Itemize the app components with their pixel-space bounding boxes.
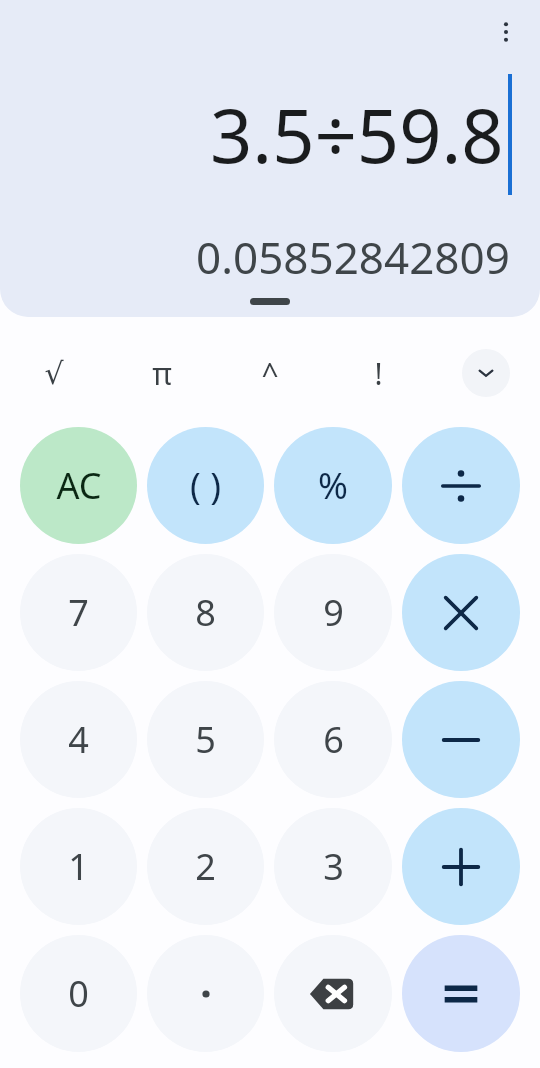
button[interactable]: Multiply bbox=[402, 554, 520, 671]
button[interactable]: 8 bbox=[147, 554, 264, 671]
button[interactable]: √ bbox=[0, 341, 108, 405]
button[interactable]: Decimal point bbox=[147, 935, 264, 1052]
button[interactable]: % bbox=[274, 427, 392, 544]
button[interactable]: Plus bbox=[402, 808, 520, 925]
button[interactable]: 3 bbox=[274, 808, 392, 925]
button[interactable]: ( ) bbox=[147, 427, 264, 544]
staticText: 1 bbox=[68, 842, 89, 891]
button[interactable]: 0 bbox=[20, 935, 137, 1052]
button[interactable]: AC bbox=[20, 427, 137, 544]
staticText: ! bbox=[374, 353, 383, 394]
button[interactable]: 5 bbox=[147, 681, 264, 798]
button[interactable]: More options bbox=[478, 4, 534, 60]
staticText: 4 bbox=[68, 715, 89, 764]
staticText: 0.05852842809 bbox=[196, 227, 510, 287]
staticText: 7 bbox=[68, 588, 89, 637]
staticText: 9 bbox=[323, 588, 344, 637]
button[interactable]: ! bbox=[324, 341, 432, 405]
staticText: 0 bbox=[68, 969, 89, 1018]
staticText: ^ bbox=[261, 353, 279, 394]
button[interactable]: Equals bbox=[402, 935, 520, 1052]
staticText: 2 bbox=[195, 842, 216, 891]
button[interactable]: 7 bbox=[20, 554, 137, 671]
button[interactable]: Minus bbox=[402, 681, 520, 798]
button[interactable]: 2 bbox=[147, 808, 264, 925]
staticText: 3.5÷59.8 bbox=[210, 84, 504, 185]
staticText: √ bbox=[44, 356, 64, 391]
button[interactable]: 9 bbox=[274, 554, 392, 671]
button[interactable] bbox=[250, 298, 290, 305]
button[interactable]: Collapse functions bbox=[462, 349, 510, 397]
button[interactable]: 1 bbox=[20, 808, 137, 925]
button[interactable]: 6 bbox=[274, 681, 392, 798]
staticText: 3 bbox=[323, 842, 344, 891]
staticText: 8 bbox=[195, 588, 216, 637]
staticText: % bbox=[318, 461, 348, 510]
button[interactable]: π bbox=[108, 341, 216, 405]
button[interactable]: 4 bbox=[20, 681, 137, 798]
staticText: 6 bbox=[323, 715, 344, 764]
staticText: π bbox=[152, 353, 172, 394]
button[interactable]: Backspace bbox=[274, 935, 392, 1052]
staticText: 5 bbox=[195, 715, 216, 764]
button[interactable]: ^ bbox=[216, 341, 324, 405]
staticText: ( ) bbox=[190, 461, 221, 510]
staticText: AC bbox=[56, 461, 102, 510]
button[interactable]: Divide bbox=[402, 427, 520, 544]
